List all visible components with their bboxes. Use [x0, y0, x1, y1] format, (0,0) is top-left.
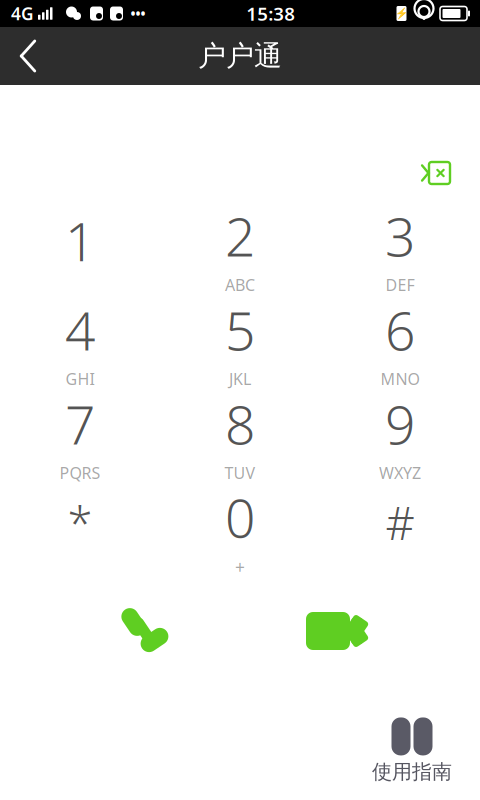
button[interactable]: * — [0, 483, 160, 577]
button[interactable]: 9 — [320, 389, 480, 483]
staticText: # — [385, 492, 414, 553]
staticText: 8 — [225, 388, 255, 459]
button[interactable]: Back — [0, 27, 56, 85]
button[interactable]: Delete — [402, 147, 468, 199]
staticText: GHI — [65, 368, 94, 389]
button[interactable]: 5 — [160, 295, 320, 389]
staticText: JKL — [229, 368, 251, 389]
staticText: 5 — [225, 294, 255, 365]
button[interactable]: 7 — [0, 389, 160, 483]
staticText: WXYZ — [379, 462, 421, 483]
staticText: 0 — [225, 482, 255, 552]
button[interactable]: 1 — [0, 201, 160, 295]
staticText: 使用指南 — [372, 759, 452, 784]
staticText: 户户通 — [198, 39, 282, 73]
staticText: * — [67, 492, 92, 553]
staticText: 9 — [385, 388, 415, 459]
button[interactable]: 6 — [320, 295, 480, 389]
staticText: 7 — [65, 388, 95, 459]
button[interactable]: 8 — [160, 389, 320, 483]
button[interactable]: Video call — [288, 595, 384, 667]
button[interactable]: 2 — [160, 201, 320, 295]
staticText: DEF — [385, 274, 414, 295]
button[interactable]: Voice call — [96, 595, 192, 667]
button[interactable]: 4 — [0, 295, 160, 389]
staticText: 4G — [11, 2, 34, 25]
button[interactable]: 使用指南 — [358, 711, 466, 790]
staticText: 2 — [225, 200, 255, 271]
button[interactable]: 3 — [320, 201, 480, 295]
staticText: 3 — [385, 200, 415, 271]
staticText: PQRS — [59, 462, 100, 483]
staticText: 6 — [385, 294, 415, 365]
button[interactable]: # — [320, 483, 480, 577]
staticText: + — [235, 555, 245, 578]
button[interactable]: 0 — [160, 483, 320, 577]
staticText: 4 — [65, 294, 95, 365]
staticText: MNO — [380, 368, 419, 389]
staticText: ••• — [130, 5, 145, 22]
staticText: TUV — [224, 462, 255, 483]
staticText: 1 — [65, 205, 95, 276]
staticText: 15:38 — [246, 1, 295, 26]
staticText: ⚡ — [395, 7, 408, 20]
staticText: ABC — [225, 274, 255, 295]
